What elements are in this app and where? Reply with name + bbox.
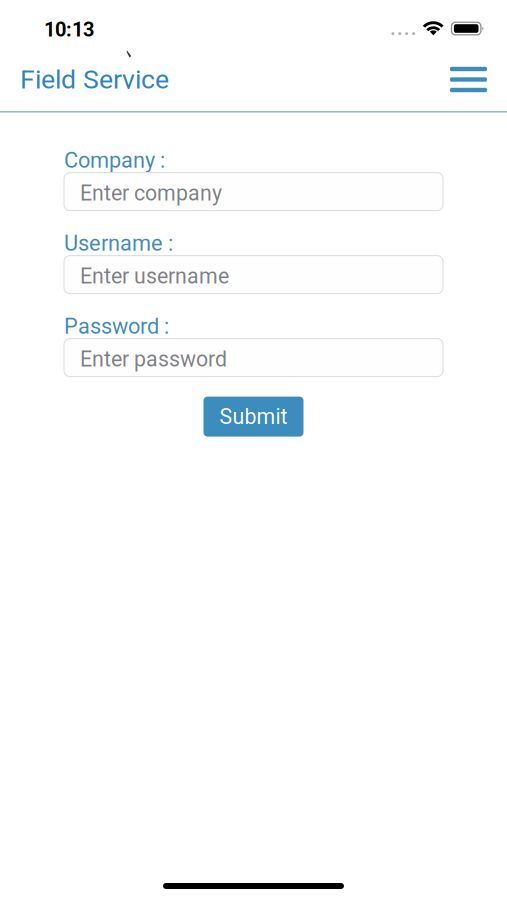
button[interactable]: Enter company [64, 173, 443, 211]
staticText: Enter username [80, 264, 229, 289]
staticText: 10:13 [44, 18, 94, 41]
button[interactable]: Enter username [64, 256, 443, 294]
staticText: Password : [64, 314, 169, 339]
staticText: Submit [219, 404, 287, 429]
button[interactable]: Menu [438, 57, 499, 102]
staticText: Field Service [20, 64, 169, 95]
button[interactable]: Enter password [64, 339, 443, 377]
staticText: Username : [64, 231, 173, 256]
button[interactable]: Submit [203, 397, 303, 437]
staticText: Company : [64, 148, 165, 173]
staticText: Enter company [80, 181, 222, 206]
staticText: Enter password [80, 347, 227, 372]
